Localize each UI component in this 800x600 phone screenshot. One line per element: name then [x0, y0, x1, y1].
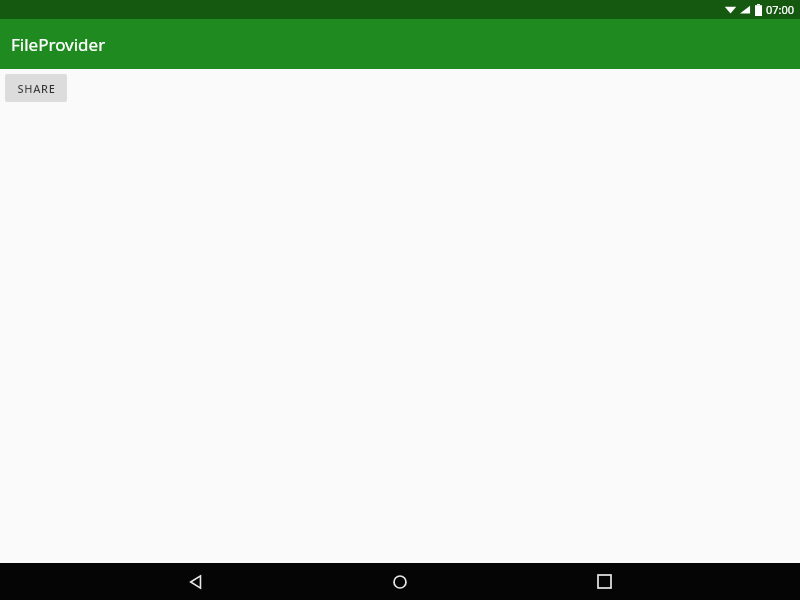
staticText: FileProvider — [11, 33, 106, 56]
button[interactable]: SHARE — [5, 74, 67, 102]
button[interactable]: Home — [376, 563, 424, 600]
staticText: SHARE — [17, 81, 56, 96]
button[interactable]: Recent apps — [580, 563, 628, 600]
staticText: 07:00 — [766, 2, 795, 17]
button[interactable]: Back — [172, 563, 220, 600]
